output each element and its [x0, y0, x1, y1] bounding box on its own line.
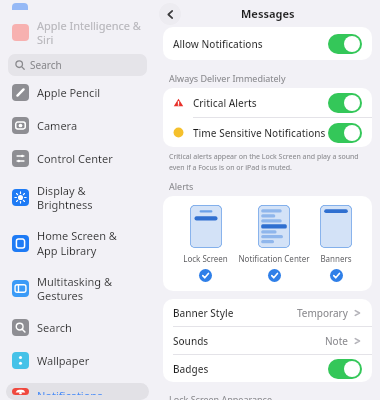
button[interactable]: Notifications	[6, 383, 149, 400]
staticText: Apple Intelligence & Siri	[37, 18, 143, 47]
button[interactable]: Allow Notifications	[163, 27, 372, 60]
staticText: Search	[37, 320, 72, 335]
button[interactable]: Apple Pencil	[6, 79, 149, 106]
button[interactable]: Toggle	[328, 34, 362, 54]
staticText: Sounds	[173, 334, 209, 348]
staticText: Banner Style	[173, 306, 234, 320]
button[interactable]: Apple Intelligence & Siri	[6, 13, 149, 52]
staticText: Control Center	[37, 151, 113, 166]
staticText: Messages	[241, 6, 295, 21]
button[interactable]: Search	[8, 54, 147, 76]
staticText: Display & Brightness	[37, 183, 143, 212]
staticText: Critical Alerts	[193, 96, 257, 110]
staticText: Always Deliver Immediately	[169, 72, 286, 84]
staticText: Lock Screen	[183, 253, 228, 264]
button[interactable]: Camera	[6, 112, 149, 139]
staticText: Camera	[37, 118, 78, 133]
staticText: Time Sensitive Notifications	[193, 126, 326, 140]
button[interactable]: Search	[6, 314, 149, 341]
button[interactable]: Toggle	[328, 93, 362, 113]
button[interactable]: Banners	[320, 205, 352, 282]
staticText: Notification Center	[238, 253, 310, 264]
button[interactable]: Multitasking & Gestures	[6, 269, 149, 308]
staticText: Wallpaper	[37, 353, 90, 368]
staticText: Banners	[320, 253, 352, 264]
staticText: Alerts	[169, 180, 194, 192]
staticText: Allow Notifications	[173, 37, 263, 51]
staticText: Notifications	[37, 388, 103, 395]
staticText: Lock Screen Appearance	[169, 393, 272, 400]
button[interactable]: Wallpaper	[6, 347, 149, 374]
button[interactable]: Back	[159, 3, 181, 25]
button[interactable]: Display & Brightness	[6, 178, 149, 217]
staticText: Critical alerts appear on the Lock Scree…	[169, 152, 359, 172]
button[interactable]: Sounds	[163, 327, 372, 354]
button[interactable]: Home Screen &	[6, 223, 149, 263]
button[interactable]: Lock Screen	[183, 205, 228, 282]
staticText: Temporary	[297, 306, 348, 320]
staticText: Badges	[173, 362, 209, 376]
button[interactable]: Critical Alerts	[163, 88, 372, 117]
button[interactable]: Control Center	[6, 145, 149, 172]
button[interactable]: Badges	[163, 355, 372, 382]
button[interactable]: Toggle	[328, 123, 362, 143]
staticText: Search	[30, 58, 62, 72]
staticText: Note	[325, 334, 348, 348]
button[interactable]: Banner Style	[163, 299, 372, 326]
button[interactable]: Time Sensitive Notifications	[163, 118, 372, 147]
staticText: Home Screen &	[37, 228, 117, 243]
staticText: App Library	[37, 243, 97, 258]
staticText: Multitasking & Gestures	[37, 274, 143, 303]
button[interactable]: Toggle	[328, 359, 362, 379]
button[interactable]: Notification Center	[238, 205, 310, 282]
staticText: Apple Pencil	[37, 85, 101, 100]
